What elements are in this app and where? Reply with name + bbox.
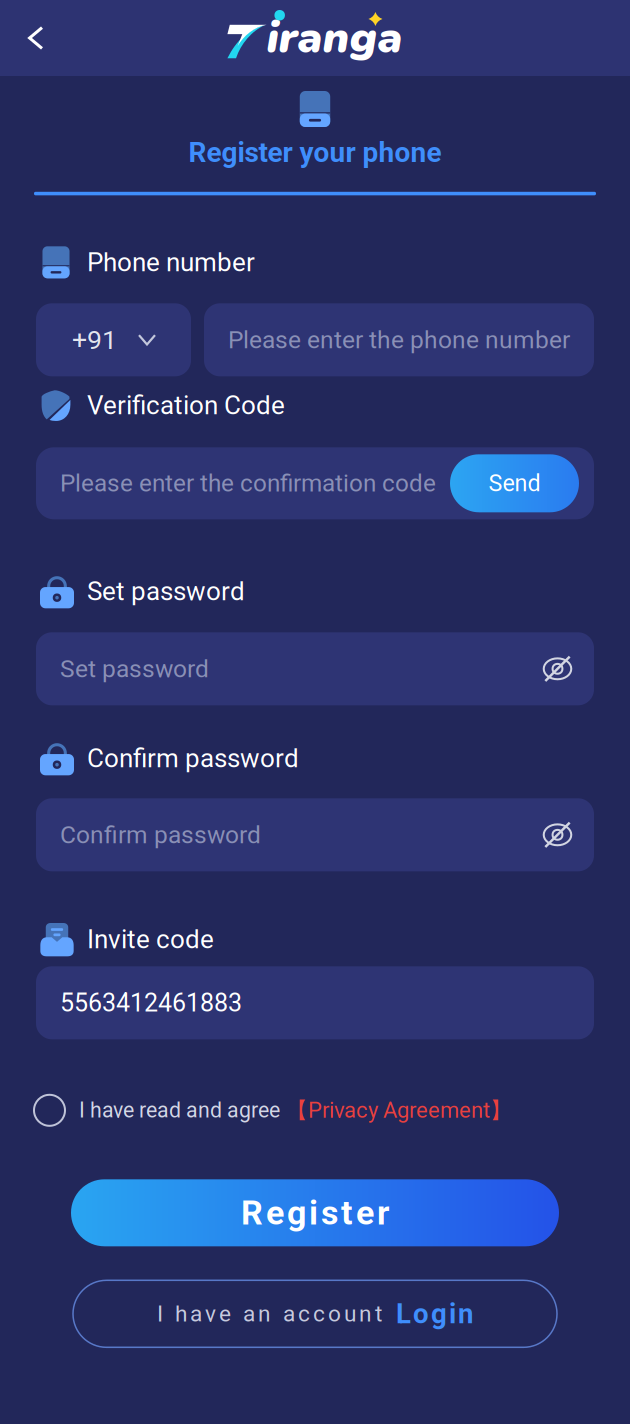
staticText: 【Privacy Agreement】	[286, 1096, 512, 1124]
button[interactable]: Back	[0, 0, 66, 76]
staticText: 5563412461883	[60, 988, 242, 1017]
staticText: Verification Code	[87, 390, 285, 421]
button[interactable]: Please enter the phone number	[204, 303, 594, 376]
staticText: Set password	[60, 654, 209, 683]
staticText: Confirm password	[60, 820, 261, 849]
staticText: Login	[396, 1298, 473, 1330]
staticText: Confirm password	[87, 743, 299, 774]
button[interactable]: 5563412461883	[36, 966, 594, 1039]
staticText: Phone number	[87, 247, 255, 278]
button[interactable]: I have an account	[0, 1280, 630, 1347]
staticText: Register	[241, 1193, 389, 1233]
staticText: I have an account	[157, 1300, 382, 1327]
staticText: Register your phone	[188, 136, 441, 169]
staticText: iranga	[267, 8, 403, 68]
staticText: +91	[72, 324, 117, 355]
button[interactable]: Register	[0, 1179, 630, 1246]
button[interactable]: I have read and agree	[0, 1087, 630, 1133]
button[interactable]: Set password	[36, 632, 594, 705]
staticText: Set password	[87, 576, 245, 607]
staticText: Please enter the phone number	[228, 325, 570, 354]
button[interactable]: Confirm password	[36, 798, 594, 871]
button[interactable]: Please enter the confirmation code	[36, 447, 594, 519]
staticText: I have read and agree	[79, 1098, 280, 1123]
staticText: Invite code	[87, 924, 214, 955]
staticText: Please enter the confirmation code	[60, 469, 436, 497]
staticText: Send	[488, 470, 540, 497]
button[interactable]: +91	[36, 303, 191, 376]
